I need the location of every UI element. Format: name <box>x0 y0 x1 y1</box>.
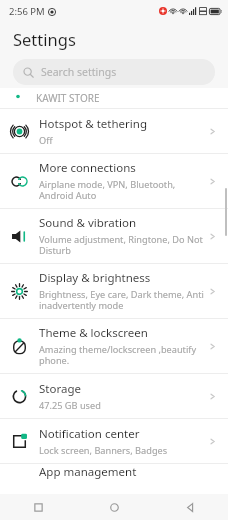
staticText: 47.25 GB used <box>39 399 101 412</box>
button[interactable]: More connections <box>0 154 228 208</box>
button[interactable]: Back <box>152 494 228 520</box>
staticText: 2:56 PM <box>9 5 45 18</box>
staticText: KAWIT STORE <box>36 91 100 105</box>
staticText: Settings <box>13 28 76 50</box>
staticText: Notification center <box>39 426 140 442</box>
staticText: Airplane mode, VPN, Bluetooth, Android A… <box>39 178 176 202</box>
button[interactable]: Display & brightness <box>0 264 228 318</box>
staticText: Hotspot & tethering <box>39 116 147 132</box>
staticText: Sound & vibration <box>39 215 136 231</box>
staticText: More connections <box>39 160 136 176</box>
staticText: Search settings <box>41 65 117 79</box>
staticText: Amazing theme/lockscreen ,beautify phone… <box>39 343 197 367</box>
button[interactable]: Sound & vibration <box>0 209 228 263</box>
staticText: Volume adjustment, Ringtone, Do Not Dist… <box>39 233 203 257</box>
button[interactable]: KAWIT STORE <box>0 88 228 108</box>
staticText: Theme & lockscreen <box>39 325 148 341</box>
button[interactable]: Storage <box>0 374 228 418</box>
button[interactable]: Recents <box>0 494 76 520</box>
button[interactable]: Theme & lockscreen <box>0 319 228 373</box>
button[interactable]: Notification center <box>0 419 228 463</box>
staticText: App management <box>39 464 137 480</box>
staticText: Storage <box>39 381 81 397</box>
button[interactable]: App management <box>0 464 228 482</box>
staticText: Brightness, Eye care, Dark theme, Anti i… <box>39 288 204 312</box>
staticText: Lock screen, Banners, Badges <box>39 444 168 457</box>
staticText: Off <box>39 134 53 147</box>
button[interactable]: Home <box>76 494 152 520</box>
staticText: Display & brightness <box>39 270 151 286</box>
button[interactable]: Search settings <box>13 59 215 85</box>
button[interactable]: Hotspot & tethering <box>0 109 228 153</box>
